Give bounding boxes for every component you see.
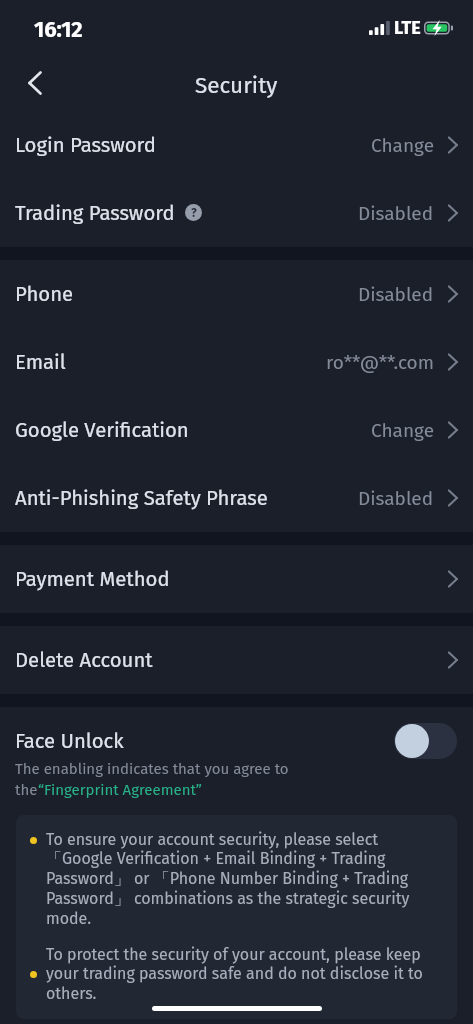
staticText: Disabled (358, 283, 434, 306)
staticText: 16:12 (34, 16, 83, 42)
staticText: Payment Method (15, 567, 170, 591)
staticText: Phone (15, 282, 74, 306)
button[interactable]: Face Unlock toggle (394, 723, 457, 759)
button[interactable]: “Fingerprint Agreement” (38, 781, 202, 799)
button[interactable]: Login Password (0, 111, 473, 179)
staticText: The enabling indicates that you agree to (15, 760, 289, 778)
staticText: Google Verification (15, 418, 189, 442)
button[interactable]: Anti-Phishing Safety Phrase (0, 464, 473, 532)
staticText: Disabled (358, 202, 434, 225)
button[interactable]: Back (14, 61, 56, 103)
staticText: Login Password (15, 133, 156, 157)
staticText: To ensure your account security, please … (46, 830, 444, 929)
staticText: LTE (394, 17, 421, 39)
button[interactable]: Email (0, 328, 473, 396)
staticText: Face Unlock (15, 729, 124, 753)
staticText: Security (195, 72, 278, 99)
button[interactable]: Delete Account (0, 626, 473, 694)
button[interactable]: Payment Method (0, 545, 473, 613)
staticText: Delete Account (15, 648, 153, 672)
staticText: ? (191, 206, 197, 220)
staticText: Change (371, 134, 434, 157)
staticText: Trading Password (15, 201, 175, 225)
staticText: ro**@**.com (326, 351, 434, 374)
staticText: the (15, 781, 38, 799)
staticText: Disabled (358, 487, 434, 510)
staticText: To protect the security of your account,… (46, 945, 444, 1004)
staticText: Change (371, 419, 434, 442)
staticText: Email (15, 350, 66, 374)
button[interactable]: Google Verification (0, 396, 473, 464)
button[interactable]: Trading Password (0, 179, 473, 247)
staticText: Anti-Phishing Safety Phrase (15, 486, 268, 510)
button[interactable]: Phone (0, 260, 473, 328)
